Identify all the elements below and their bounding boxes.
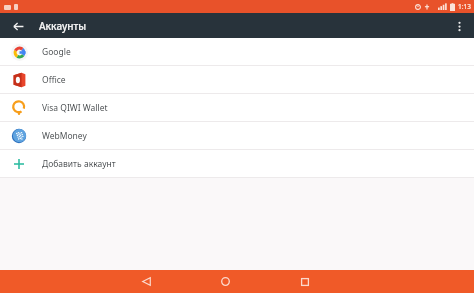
button[interactable]: Visa QIWI Wallet (0, 94, 474, 121)
staticText: WebMoney (42, 130, 87, 142)
staticText: 1:13 (458, 2, 471, 11)
staticText: Google (42, 46, 71, 58)
staticText: Office (42, 74, 66, 86)
button[interactable]: Google (0, 38, 474, 65)
button[interactable]: Back (132, 270, 160, 293)
button[interactable]: Recent apps (291, 270, 319, 293)
button[interactable]: More options (449, 16, 469, 36)
staticText: Visa QIWI Wallet (42, 102, 108, 114)
button[interactable]: Добавить аккаунт (0, 150, 474, 177)
button[interactable]: Office (0, 66, 474, 93)
button[interactable]: WebMoney (0, 122, 474, 149)
button[interactable]: Back (8, 16, 28, 36)
button[interactable]: Home (211, 270, 239, 293)
staticText: Добавить аккаунт (42, 158, 116, 170)
staticText: Аккаунты (39, 19, 87, 33)
